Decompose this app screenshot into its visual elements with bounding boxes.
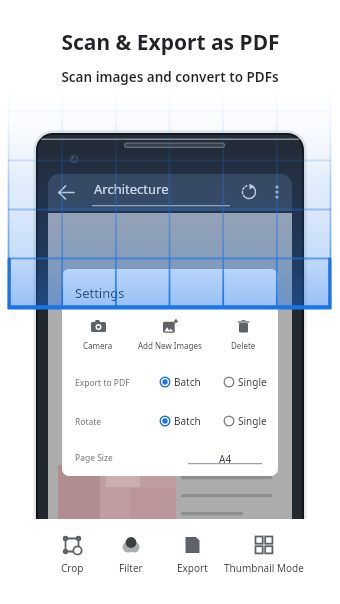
- button[interactable]: Filter: [91, 530, 171, 578]
- staticText: Single: [238, 414, 267, 428]
- staticText: Thumbnail Mode: [224, 561, 304, 575]
- button[interactable]: More options: [268, 183, 286, 201]
- button[interactable]: Thumbnail Mode: [224, 530, 304, 578]
- staticText: Delete: [231, 340, 256, 351]
- staticText: Settings: [75, 284, 125, 302]
- button[interactable]: Batch: [159, 374, 201, 390]
- staticText: Batch: [174, 375, 201, 389]
- button[interactable]: Add New Images: [134, 319, 206, 351]
- staticText: Scan & Export as PDF: [61, 28, 280, 57]
- staticText: Add New Images: [138, 340, 202, 351]
- button[interactable]: Crop: [32, 530, 112, 578]
- staticText: Rotate: [75, 416, 102, 428]
- staticText: Scan images and convert to PDFs: [61, 68, 279, 86]
- button[interactable]: Delete: [207, 319, 278, 351]
- staticText: Page Size: [75, 452, 113, 464]
- staticText: Export: [177, 561, 208, 575]
- button[interactable]: Rotate: [240, 183, 258, 201]
- button[interactable]: Single: [223, 374, 267, 390]
- staticText: Single: [238, 375, 267, 389]
- staticText: Architecture: [94, 180, 169, 198]
- button[interactable]: Single: [223, 413, 267, 429]
- staticText: A4: [219, 452, 232, 466]
- button[interactable]: Batch: [159, 413, 201, 429]
- staticText: Camera: [83, 340, 113, 351]
- staticText: Export to PDF: [75, 377, 130, 389]
- button[interactable]: Export: [152, 530, 232, 578]
- staticText: Filter: [119, 561, 143, 575]
- staticText: Batch: [174, 414, 201, 428]
- button[interactable]: Camera: [62, 319, 134, 351]
- staticText: Crop: [61, 561, 84, 575]
- button[interactable]: Back: [56, 182, 77, 203]
